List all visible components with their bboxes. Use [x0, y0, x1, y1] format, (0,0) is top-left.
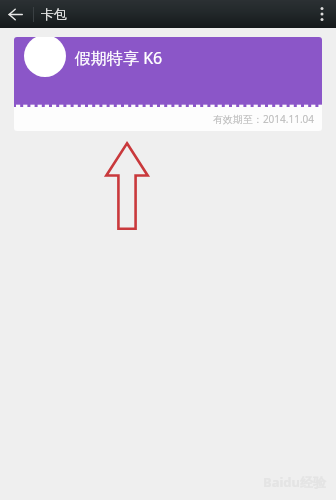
button[interactable]: Back	[0, 0, 30, 28]
staticText: Baidu经验	[263, 473, 326, 491]
staticText: 卡包	[41, 6, 67, 22]
staticText: 有效期至：2014.11.04	[212, 112, 314, 126]
button[interactable]: More options	[308, 0, 336, 28]
button[interactable]: 假期特享 K6	[14, 37, 322, 131]
staticText: 假期特享 K6	[75, 47, 163, 69]
